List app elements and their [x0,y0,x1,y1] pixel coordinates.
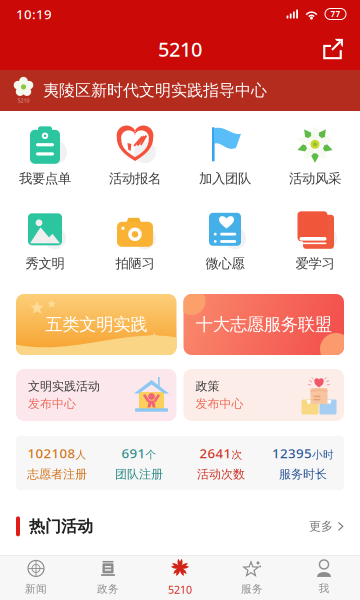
staticText: 秀文明 [25,255,64,272]
staticText: 十大志愿服务联盟 [196,314,332,335]
staticText: 政策 [195,379,219,393]
staticText: 5210 [17,97,29,104]
staticText: 102108 [27,444,75,462]
button[interactable]: 十大志愿服务联盟 [183,294,344,355]
staticText: 发布中心 [28,396,76,411]
button[interactable]: 更多 [297,513,344,540]
button[interactable]: 5210 [144,555,216,600]
staticText: 12395 [272,444,312,462]
staticText: 更多 [309,519,333,534]
button[interactable]: 新闻 [0,555,72,600]
button[interactable]: 分享 [312,29,354,68]
staticText: 我要点单 [19,170,71,187]
staticText: 个 [145,448,156,461]
button[interactable]: 活动报名 [90,113,180,198]
staticText: 新闻 [25,582,47,595]
button[interactable]: 政务 [72,555,144,600]
button[interactable]: 拍陋习 [90,198,180,283]
staticText: 夷陵区新时代文明实践指导中心 [43,81,267,100]
button[interactable]: 微心愿 [180,198,270,283]
button[interactable]: 我 [288,555,360,600]
staticText: 5210 [168,582,192,597]
button[interactable]: 文明实践活动 [16,369,176,421]
staticText: 691 [121,444,145,462]
staticText: 加入团队 [199,170,251,187]
staticText: 小时 [312,448,334,461]
button[interactable]: 秀文明 [0,198,90,283]
staticText: 微心愿 [205,255,244,272]
button[interactable]: 活动风采 [270,113,360,198]
staticText: 爱学习 [295,255,334,272]
button[interactable]: 加入团队 [180,113,270,198]
staticText: 发布中心 [195,396,243,411]
staticText: 5210 [158,36,202,62]
button[interactable]: 服务 [216,555,288,600]
button[interactable]: 五类文明实践 [16,294,176,355]
staticText: 人 [75,448,86,461]
staticText: 77 [330,9,340,19]
staticText: 志愿者注册 [27,467,87,482]
staticText: 2641 [199,444,231,462]
staticText: 团队注册 [115,467,163,482]
staticText: 文明实践活动 [28,379,100,393]
staticText: 五类文明实践 [45,314,147,335]
staticText: 服务时长 [279,467,327,482]
staticText: 我 [318,582,329,595]
button[interactable]: 政策 [183,369,344,421]
staticText: 拍陋习 [115,255,154,272]
staticText: 服务 [241,582,263,595]
staticText: 活动次数 [197,467,245,482]
staticText: 10:19 [16,5,52,23]
staticText: 热门活动 [29,516,93,536]
staticText: 活动报名 [109,170,161,187]
button[interactable]: 我要点单 [0,113,90,198]
button[interactable]: 爱学习 [270,198,360,283]
staticText: 政务 [97,582,119,595]
staticText: 次 [231,448,242,461]
staticText: 活动风采 [289,170,341,187]
